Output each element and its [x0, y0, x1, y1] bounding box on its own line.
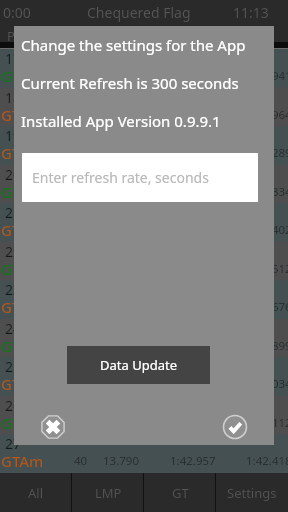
staticText: GT	[1, 220, 21, 240]
staticText: 8.115	[103, 145, 133, 161]
staticText: 24	[5, 319, 22, 338]
staticText: 1:42.899	[246, 338, 288, 354]
staticText: 25	[5, 357, 22, 376]
staticText: Chequered Flag	[87, 3, 191, 22]
button[interactable]: 25	[0, 357, 288, 396]
staticText: 27	[5, 434, 22, 453]
staticText: 20	[5, 165, 22, 184]
staticText: Settings	[227, 484, 277, 502]
staticText: 21	[5, 203, 22, 222]
staticText: 90	[74, 376, 88, 392]
staticText: Enter refresh rate, seconds	[32, 168, 209, 187]
staticText: 1:41.964	[246, 107, 288, 123]
staticText: 17	[5, 49, 22, 68]
button[interactable]: Settings	[216, 473, 288, 512]
staticText: 1:42.289	[246, 145, 288, 161]
staticText: 22	[5, 242, 22, 261]
button[interactable]: 27	[0, 434, 288, 473]
staticText: 1:42.989	[170, 145, 216, 161]
button[interactable]: 26	[0, 396, 288, 435]
staticText: Installed App Version 0.9.9.1	[21, 111, 221, 131]
staticText: 13.790	[103, 453, 139, 469]
staticText: All	[28, 484, 44, 502]
staticText: 71	[74, 145, 88, 161]
button[interactable]: Data Update	[67, 346, 210, 384]
staticText: 40	[74, 453, 88, 469]
staticText: 5.241	[103, 68, 133, 84]
staticText: Last	[172, 27, 198, 45]
staticText: 1:42.957	[170, 453, 216, 469]
button[interactable]: 23	[0, 280, 288, 319]
staticText: 51	[74, 107, 88, 123]
staticText: GT	[172, 484, 189, 502]
staticText: GT	[1, 374, 21, 394]
button[interactable]: 21	[0, 203, 288, 242]
staticText: 11:13	[233, 3, 269, 22]
staticText: 1:42.664	[170, 107, 216, 123]
staticText: 1:41.941	[246, 68, 288, 84]
staticText: 47	[74, 338, 88, 354]
button[interactable]: Cancel	[41, 415, 65, 439]
button[interactable]: 17	[0, 49, 288, 88]
staticText: 1:41.120	[170, 68, 216, 84]
button[interactable]: 19	[0, 126, 288, 165]
staticText: GT	[1, 182, 21, 202]
staticText: GT	[1, 336, 21, 356]
staticText: 1:43.134	[170, 376, 216, 392]
staticText: P	[7, 27, 15, 45]
staticText: Data Update	[100, 356, 177, 374]
staticText: Change the settings for the App	[21, 35, 246, 55]
staticText: 1:43.034	[246, 376, 288, 392]
staticText: 6.874	[103, 107, 133, 123]
staticText: GT	[1, 413, 21, 433]
staticText: GTAm	[1, 451, 44, 471]
staticText: 63	[74, 68, 88, 84]
staticText: GT	[1, 143, 21, 163]
staticText: Gap	[100, 27, 125, 45]
staticText: 12.99	[103, 338, 133, 354]
staticText: No	[47, 27, 65, 45]
button[interactable]: LMP	[72, 473, 144, 512]
button[interactable]: Accept	[223, 415, 247, 439]
button[interactable]: Enter refresh rate, seconds	[22, 153, 258, 202]
button[interactable]: All	[0, 473, 72, 512]
staticText: 23	[5, 280, 22, 299]
staticText: Best	[240, 27, 267, 45]
staticText: 26	[5, 396, 22, 415]
staticText: 13.21	[103, 376, 133, 392]
staticText: GT	[1, 259, 21, 279]
button[interactable]: 20	[0, 165, 288, 204]
staticText: 1:43.112	[246, 415, 288, 431]
staticText: GT	[1, 105, 21, 125]
button[interactable]: 24	[0, 319, 288, 358]
staticText: 0:00	[3, 3, 31, 22]
staticText: 19	[5, 126, 22, 145]
staticText: 1:42.402	[246, 222, 288, 238]
staticText: 1:42.418	[246, 453, 288, 469]
staticText: 1:42.512	[246, 261, 288, 277]
staticText: GT	[1, 297, 21, 317]
staticText: Current Refresh is 300 seconds	[21, 73, 239, 93]
staticText: GT	[1, 66, 21, 86]
button[interactable]: 18	[0, 88, 288, 127]
button[interactable]: GT	[144, 473, 216, 512]
staticText: 1:43.999	[170, 338, 216, 354]
staticText: LMP	[95, 484, 122, 502]
staticText: 1:42.334	[246, 184, 288, 200]
staticText: 18	[5, 88, 22, 107]
button[interactable]: 22	[0, 242, 288, 281]
